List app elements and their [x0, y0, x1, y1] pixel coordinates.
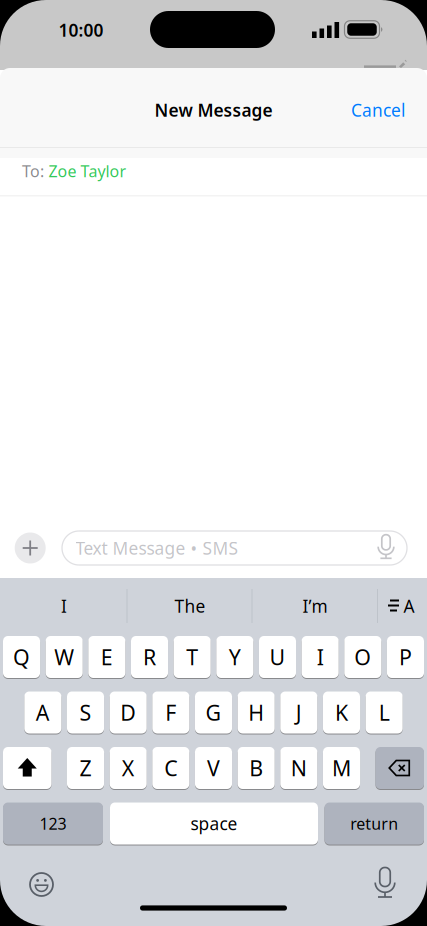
button[interactable]: The — [135, 586, 245, 626]
staticText: To: — [22, 160, 44, 182]
button[interactable]: R — [131, 635, 168, 678]
button[interactable]: I — [302, 635, 339, 678]
staticText: M — [332, 754, 351, 782]
staticText: V — [207, 754, 220, 782]
staticText: G — [205, 698, 221, 727]
staticText: New Message — [154, 98, 272, 121]
staticText: S — [79, 698, 91, 727]
button[interactable]: B — [238, 746, 275, 789]
staticText: J — [296, 698, 302, 727]
button[interactable]: N — [280, 746, 317, 789]
button[interactable]: Y — [216, 635, 253, 678]
staticText: F — [165, 698, 176, 727]
staticText: T — [186, 643, 198, 671]
button[interactable]: Z — [67, 746, 104, 789]
button[interactable]: Autofill — [380, 586, 424, 626]
button[interactable]: 123 — [3, 802, 103, 845]
button[interactable]: space — [110, 802, 318, 845]
staticText: H — [248, 698, 264, 727]
staticText: 10:00 — [58, 18, 103, 41]
button[interactable]: I’m — [260, 586, 370, 626]
staticText: I — [61, 594, 67, 617]
staticText: B — [249, 754, 263, 782]
button[interactable]: X — [110, 746, 147, 789]
staticText: X — [122, 754, 135, 782]
staticText: K — [335, 698, 348, 727]
staticText: space — [190, 812, 237, 835]
button[interactable]: Delete — [375, 746, 424, 789]
staticText: R — [143, 643, 156, 671]
button[interactable]: A — [24, 691, 61, 734]
button[interactable]: J — [280, 691, 317, 734]
button[interactable]: D — [110, 691, 147, 734]
button[interactable]: S — [67, 691, 104, 734]
staticText: I’m — [302, 594, 327, 617]
button[interactable]: T — [174, 635, 211, 678]
button[interactable]: Shift — [3, 746, 51, 789]
button[interactable]: Emoji — [24, 867, 58, 901]
staticText: Cancel — [351, 98, 405, 121]
button[interactable]: L — [366, 691, 403, 734]
staticText: A — [403, 594, 414, 617]
button[interactable]: Cancel — [340, 88, 416, 132]
staticText: U — [269, 643, 285, 671]
staticText: D — [120, 698, 136, 727]
staticText: W — [54, 643, 74, 671]
button[interactable]: Q — [3, 635, 40, 678]
button[interactable]: C — [152, 746, 189, 789]
staticText: Zoe Taylor — [48, 160, 126, 182]
button[interactable]: F — [152, 691, 189, 734]
button[interactable]: V — [195, 746, 232, 789]
button[interactable]: M — [323, 746, 360, 789]
button[interactable]: W — [46, 635, 83, 678]
button[interactable]: To: — [0, 147, 427, 195]
staticText: E — [101, 643, 113, 671]
staticText: Text Message • SMS — [75, 536, 238, 559]
staticText: I — [317, 643, 324, 671]
staticText: The — [174, 594, 205, 617]
button[interactable]: H — [238, 691, 275, 734]
staticText: Z — [79, 754, 91, 782]
button[interactable]: I — [9, 586, 119, 626]
button[interactable]: return — [324, 802, 424, 845]
staticText: N — [291, 754, 307, 782]
staticText: L — [379, 698, 390, 727]
button[interactable]: Dictation — [368, 865, 402, 903]
button[interactable]: U — [259, 635, 296, 678]
button[interactable]: Add attachment — [15, 532, 46, 563]
button[interactable]: O — [344, 635, 381, 678]
staticText: Q — [13, 643, 30, 671]
staticText: O — [354, 643, 371, 671]
button[interactable]: E — [88, 635, 125, 678]
button[interactable]: G — [195, 691, 232, 734]
button[interactable]: K — [323, 691, 360, 734]
button[interactable]: Dictate — [373, 533, 399, 563]
button[interactable]: Message text field — [62, 531, 407, 565]
staticText: C — [164, 754, 177, 782]
staticText: P — [399, 643, 412, 671]
staticText: A — [36, 698, 50, 727]
staticText: Y — [229, 643, 241, 671]
staticText: 123 — [39, 813, 66, 834]
button[interactable]: P — [387, 635, 424, 678]
staticText: return — [350, 813, 398, 834]
